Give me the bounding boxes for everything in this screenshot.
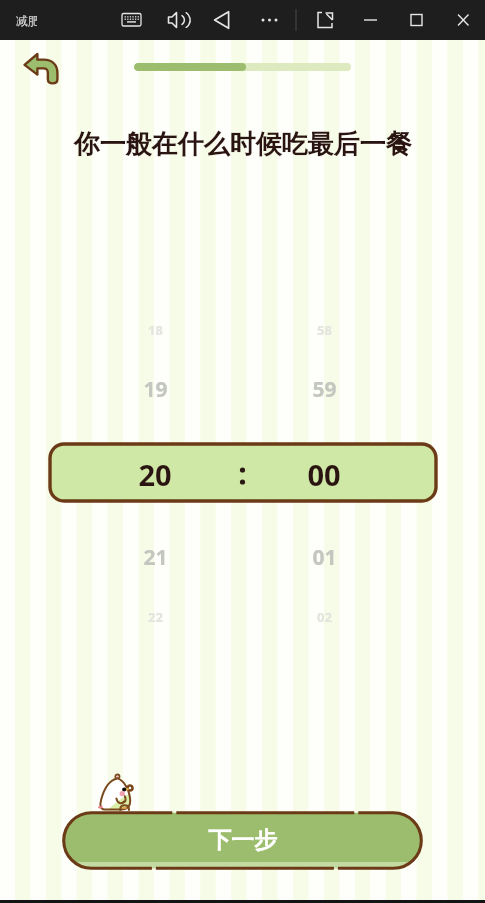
staticText: 00 — [307, 455, 341, 494]
staticText: 59 — [312, 375, 337, 404]
button[interactable]: Back — [16, 46, 64, 94]
button[interactable]: 59 — [274, 365, 374, 413]
staticText: 18 — [148, 321, 163, 339]
staticText: 19 — [143, 375, 168, 404]
staticText: 你一般在什么时候吃最后一餐 — [0, 128, 485, 161]
staticText: 01 — [312, 543, 337, 572]
staticText: 下一步 — [208, 826, 277, 855]
staticText: 02 — [317, 608, 332, 626]
button[interactable]: 20 — [105, 450, 205, 498]
button[interactable]: 19 — [105, 365, 205, 413]
staticText: 22 — [148, 608, 163, 626]
staticText: 20 — [138, 455, 172, 494]
button[interactable]: 21 — [105, 533, 205, 581]
button[interactable]: 下一步 — [62, 811, 423, 870]
button[interactable]: 58 — [274, 306, 374, 354]
button[interactable]: 00 — [274, 450, 374, 498]
button[interactable]: 02 — [274, 593, 374, 641]
button[interactable]: 01 — [274, 533, 374, 581]
staticText: 58 — [317, 321, 332, 339]
staticText: 21 — [143, 543, 168, 572]
button[interactable]: 22 — [105, 593, 205, 641]
staticText: 减肥 — [16, 13, 37, 28]
button[interactable]: 18 — [105, 306, 205, 354]
